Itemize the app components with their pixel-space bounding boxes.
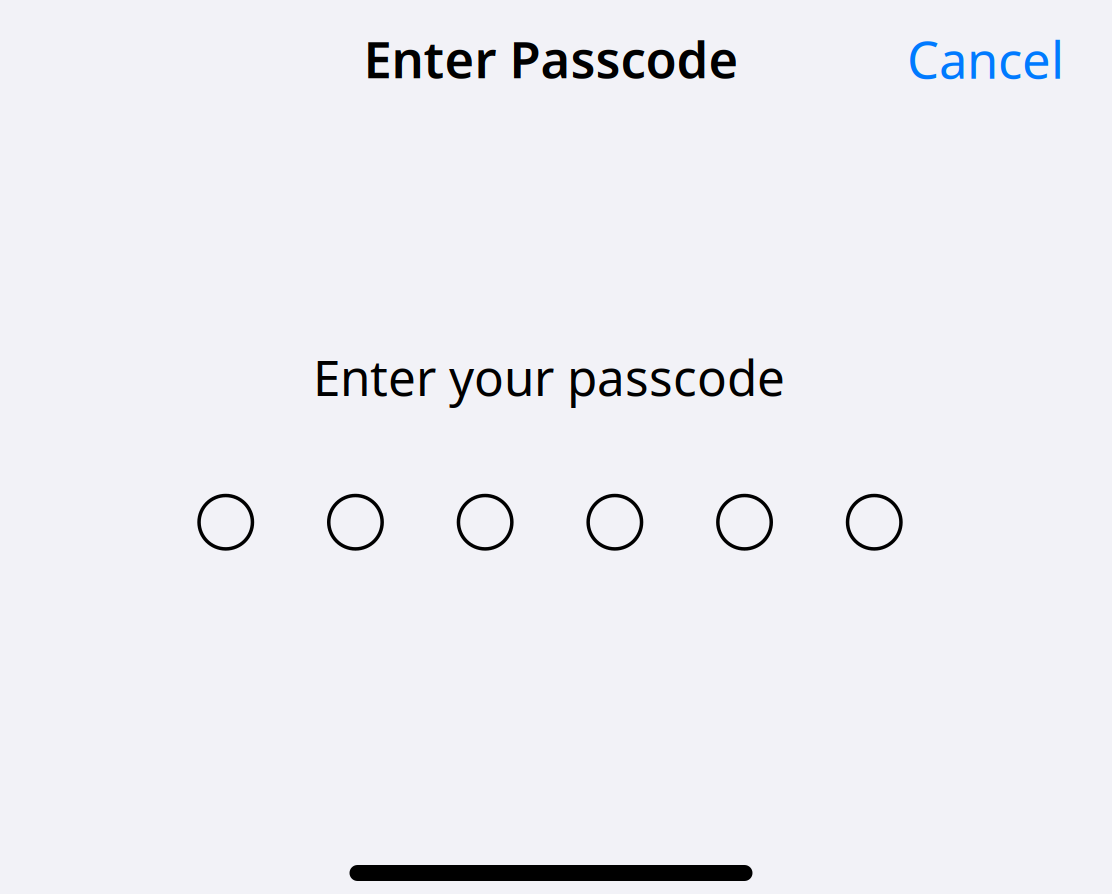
staticText: Enter your passcode [313, 344, 785, 409]
staticText: Cancel [907, 25, 1064, 93]
staticText: Enter Passcode [363, 25, 738, 92]
button[interactable]: Cancel [881, 0, 1090, 118]
